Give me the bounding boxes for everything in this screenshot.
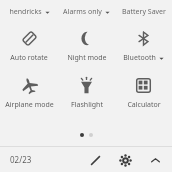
button[interactable]: Alarms only [58, 5, 115, 19]
button[interactable]: Calculator [115, 75, 172, 112]
staticText: Airplane mode [5, 100, 54, 110]
staticText: Auto rotate [10, 53, 48, 63]
button[interactable]: hendricks [0, 5, 58, 19]
staticText: 02/23 [10, 154, 32, 165]
button[interactable]: Edit [86, 151, 104, 169]
staticText: Battery Saver [122, 7, 166, 17]
staticText: Calculator [127, 100, 161, 110]
staticText: Flashlight [71, 100, 103, 110]
staticText: Alarms only [63, 7, 102, 17]
button[interactable]: Flashlight [58, 75, 115, 112]
button[interactable]: Airplane mode [0, 75, 58, 112]
button[interactable]: Battery Saver [115, 5, 172, 19]
button[interactable]: Settings [116, 151, 134, 169]
staticText: Night mode [67, 53, 107, 63]
button[interactable]: Auto rotate [0, 28, 58, 65]
button[interactable]: Night mode [58, 28, 115, 65]
button[interactable]: Collapse [146, 151, 164, 169]
button[interactable]: Bluetooth [115, 28, 172, 65]
staticText: Bluetooth [123, 53, 156, 63]
staticText: hendricks [9, 7, 42, 17]
